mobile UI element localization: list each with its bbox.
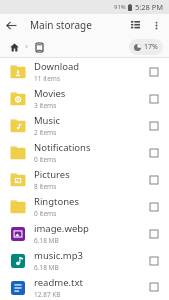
staticText: 0 items (34, 209, 57, 218)
button[interactable]: Home (6, 39, 22, 55)
button[interactable]: image.webp (0, 220, 169, 247)
staticText: 17% (144, 42, 158, 52)
button[interactable]: Internal storage (31, 39, 47, 55)
staticText: 12.87 KB (34, 290, 61, 299)
button[interactable]: Notifications (0, 139, 169, 166)
button[interactable]: Select Music (145, 117, 163, 135)
staticText: 3 items (34, 101, 57, 110)
staticText: Music (34, 114, 61, 127)
button[interactable]: 17% (129, 39, 163, 55)
button[interactable]: Music (0, 112, 169, 139)
button[interactable]: music.mp3 (0, 247, 169, 274)
staticText: 6.18 MB (34, 236, 59, 245)
button[interactable]: Select Notifications (145, 144, 163, 162)
staticText: Ringtones (34, 195, 80, 208)
staticText: 8 items (34, 182, 57, 191)
staticText: 11 items (34, 74, 61, 83)
button[interactable]: Select image.webp (145, 225, 163, 243)
button[interactable]: Movies (0, 85, 169, 112)
button[interactable]: Ringtones (0, 193, 169, 220)
button[interactable]: Select Ringtones (145, 198, 163, 216)
staticText: 5:28 PM (135, 2, 164, 12)
button[interactable]: Select music.mp3 (145, 252, 163, 270)
button[interactable]: Pictures (0, 166, 169, 193)
staticText: 6.18 MB (34, 263, 59, 272)
staticText: Movies (34, 87, 66, 100)
button[interactable]: readme.txt (0, 274, 169, 300)
staticText: 91% (114, 3, 126, 11)
button[interactable]: View mode (124, 14, 146, 36)
staticText: Notifications (34, 141, 91, 154)
button[interactable]: More options (146, 15, 166, 35)
staticText: Download (34, 60, 80, 73)
staticText: Pictures (34, 168, 70, 181)
button[interactable]: Select Pictures (145, 171, 163, 189)
button[interactable]: Select Movies (145, 90, 163, 108)
button[interactable]: Select Download (145, 63, 163, 81)
button[interactable]: Download (0, 58, 169, 85)
staticText: 0 items (34, 155, 57, 164)
staticText: readme.txt (34, 276, 83, 289)
button[interactable]: Select readme.txt (145, 278, 163, 296)
staticText: image.webp (34, 222, 89, 235)
button[interactable]: Back (0, 14, 22, 36)
staticText: 2 items (34, 128, 57, 137)
staticText: Main storage (30, 18, 92, 32)
staticText: music.mp3 (34, 249, 84, 262)
